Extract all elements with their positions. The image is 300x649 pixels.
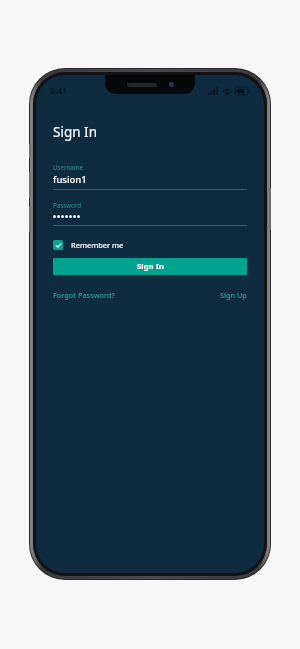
staticText: Remember me bbox=[71, 240, 124, 250]
button[interactable]: Forgot Password? bbox=[53, 290, 115, 300]
button[interactable]: Username bbox=[53, 163, 247, 190]
staticText: Sign In bbox=[137, 261, 164, 272]
staticText: Password bbox=[53, 201, 81, 209]
staticText: fusion1 bbox=[53, 173, 87, 186]
button[interactable]: Sign Up bbox=[220, 290, 247, 300]
staticText: Sign Up bbox=[220, 290, 247, 300]
button[interactable]: Password bbox=[53, 201, 247, 226]
staticText: Forgot Password? bbox=[53, 290, 115, 300]
staticText: Username bbox=[53, 163, 84, 171]
button[interactable]: Sign In bbox=[53, 258, 247, 275]
staticText: Sign In bbox=[53, 123, 97, 141]
button[interactable]: Remember me bbox=[53, 240, 124, 250]
staticText: 9:41 bbox=[50, 85, 67, 97]
